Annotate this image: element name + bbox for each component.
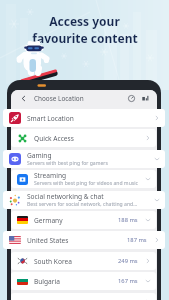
staticText: Servers with best ping for videos and mu… — [34, 180, 138, 187]
staticText: 249 ms — [118, 257, 138, 265]
button[interactable]: Social networking & chat — [3, 191, 165, 209]
staticText: Germany — [34, 216, 63, 225]
button[interactable]: Signal — [142, 95, 149, 102]
button[interactable]: South Korea — [11, 252, 156, 270]
staticText: Streaming — [34, 171, 67, 180]
staticText: Bulgaria — [34, 277, 60, 286]
button[interactable]: Quick Access — [11, 129, 156, 147]
staticText: Social networking & chat — [27, 192, 104, 201]
button[interactable]: United States — [3, 231, 165, 249]
staticText: 188 ms — [118, 216, 138, 224]
staticText: favourite content — [32, 30, 138, 46]
button[interactable]: Streaming — [11, 170, 156, 188]
button[interactable]: Gaming — [3, 150, 165, 168]
staticText: South Korea — [34, 257, 72, 266]
staticText: United States — [27, 236, 69, 245]
button[interactable]: Speed test — [128, 95, 135, 102]
staticText: 167 ms — [118, 277, 138, 285]
button[interactable]: Back — [20, 95, 27, 102]
staticText: Quick Access — [34, 134, 74, 143]
button[interactable]: Bulgaria — [11, 272, 156, 290]
staticText: Gaming — [27, 151, 52, 160]
staticText: 187 ms — [127, 236, 147, 244]
staticText: Smart Location — [27, 114, 74, 123]
staticText: Choose Location — [34, 94, 84, 103]
button[interactable]: Smart Location — [3, 109, 165, 127]
staticText: Best servers for social network, chattin… — [27, 201, 138, 208]
staticText: Access your — [49, 13, 120, 29]
staticText: Servers with best ping for gamers — [27, 160, 108, 167]
button[interactable]: Germany — [11, 211, 156, 229]
